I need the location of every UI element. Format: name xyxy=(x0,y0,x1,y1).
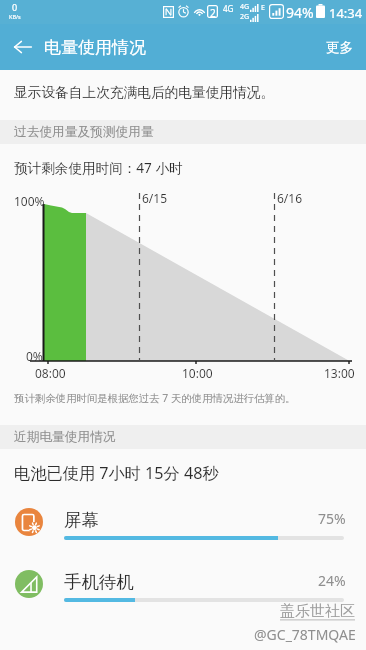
staticText: 0 xyxy=(12,1,18,13)
staticText: 94% xyxy=(286,3,314,22)
staticText: 预计剩余使用时间是根据您过去 7 天的使用情况进行估算的。 xyxy=(14,391,296,405)
staticText: 盖乐世社区 xyxy=(280,602,355,621)
staticText: 2 xyxy=(210,6,216,20)
staticText: 08:00 xyxy=(35,365,66,381)
staticText: 24% xyxy=(318,571,346,590)
staticText: 电量使用情况 xyxy=(44,37,146,58)
staticText: 0% xyxy=(26,348,43,364)
staticText: 屏幕 xyxy=(64,509,99,531)
button[interactable]: 屏幕 xyxy=(0,500,366,552)
staticText: 6/15 xyxy=(142,190,168,206)
staticText: 6/16 xyxy=(277,190,303,206)
staticText: 预计剩余使用时间：47 小时 xyxy=(14,158,183,177)
staticText: 手机待机 xyxy=(64,571,134,593)
staticText: 显示设备自上次充满电后的电量使用情况。 xyxy=(14,84,275,101)
staticText: 75% xyxy=(318,509,346,528)
staticText: 2G xyxy=(240,12,250,22)
staticText: 电池已使用 7小时 15分 48秒 xyxy=(14,462,219,484)
staticText: 13:00 xyxy=(324,365,355,381)
button[interactable]: 更多 xyxy=(312,29,366,66)
button[interactable]: 手机待机 xyxy=(0,562,366,614)
staticText: 100% xyxy=(14,193,45,209)
staticText: 10:00 xyxy=(182,365,213,381)
staticText: 更多 xyxy=(326,39,354,56)
button[interactable]: Back xyxy=(0,24,46,70)
staticText: 14:34 xyxy=(329,4,363,22)
staticText: 近期电量使用情况 xyxy=(14,429,116,445)
staticText: @GC_78TMQAE xyxy=(254,625,356,644)
staticText: 4G xyxy=(223,3,234,14)
staticText: 过去使用量及预测使用量 xyxy=(14,124,154,140)
staticText: KB/s xyxy=(9,13,21,20)
staticText: 4G xyxy=(240,2,250,12)
staticText: E xyxy=(261,3,265,13)
